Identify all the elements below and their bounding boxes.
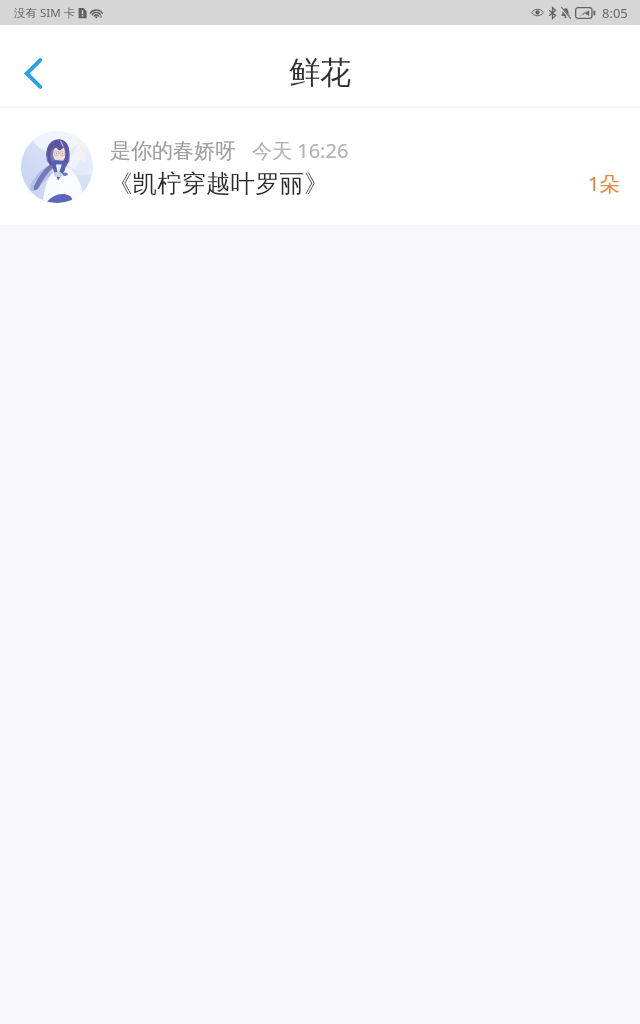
button[interactable]: Back [1,41,65,105]
staticText: 8:05 [602,4,628,22]
staticText: 没有 SIM 卡 [14,5,76,21]
staticText: 1朵 [588,170,620,197]
button[interactable]: 是你的春娇呀 [0,109,640,225]
staticText: 《凯柠穿越叶罗丽》 [108,168,329,199]
staticText: 今天 16:26 [252,137,349,164]
staticText: 鲜花 [289,53,351,92]
staticText: 是你的春娇呀 [110,138,236,164]
